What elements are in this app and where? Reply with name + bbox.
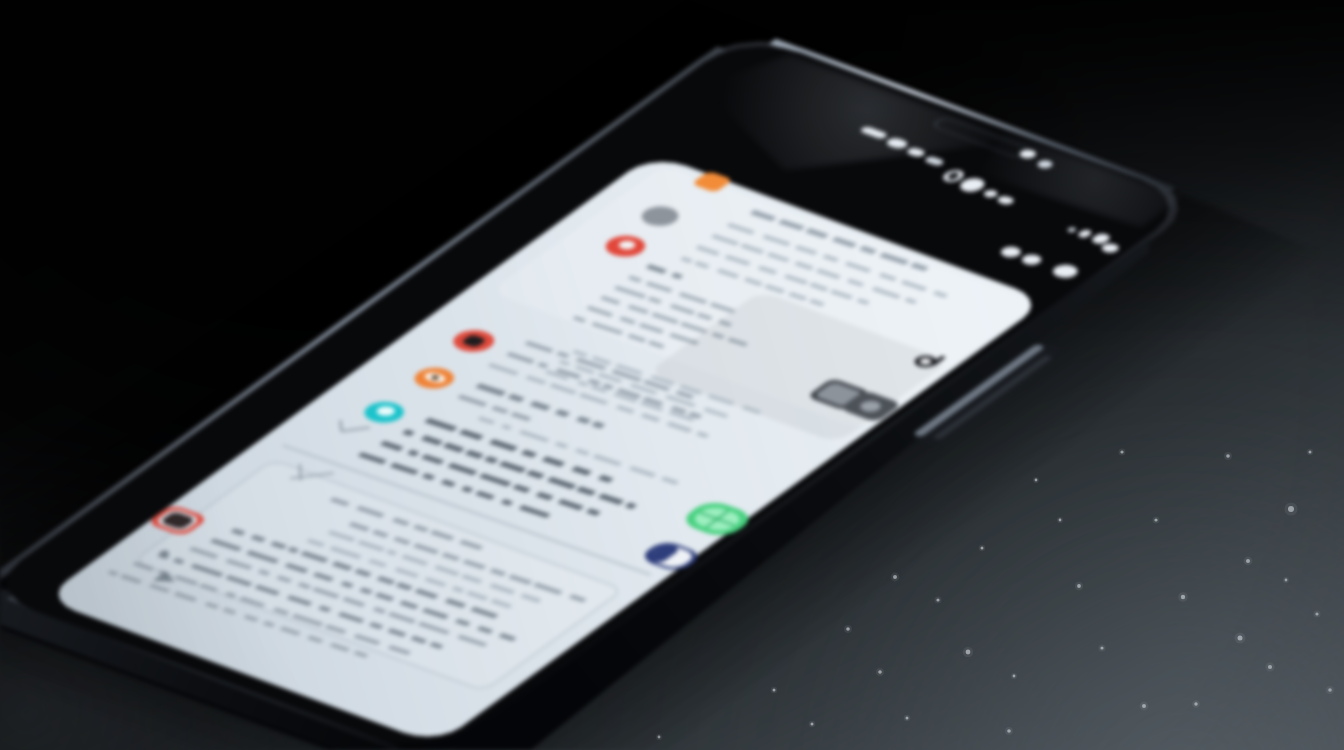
button[interactable]: Phone on desk showing notifications — [0, 0, 1344, 750]
